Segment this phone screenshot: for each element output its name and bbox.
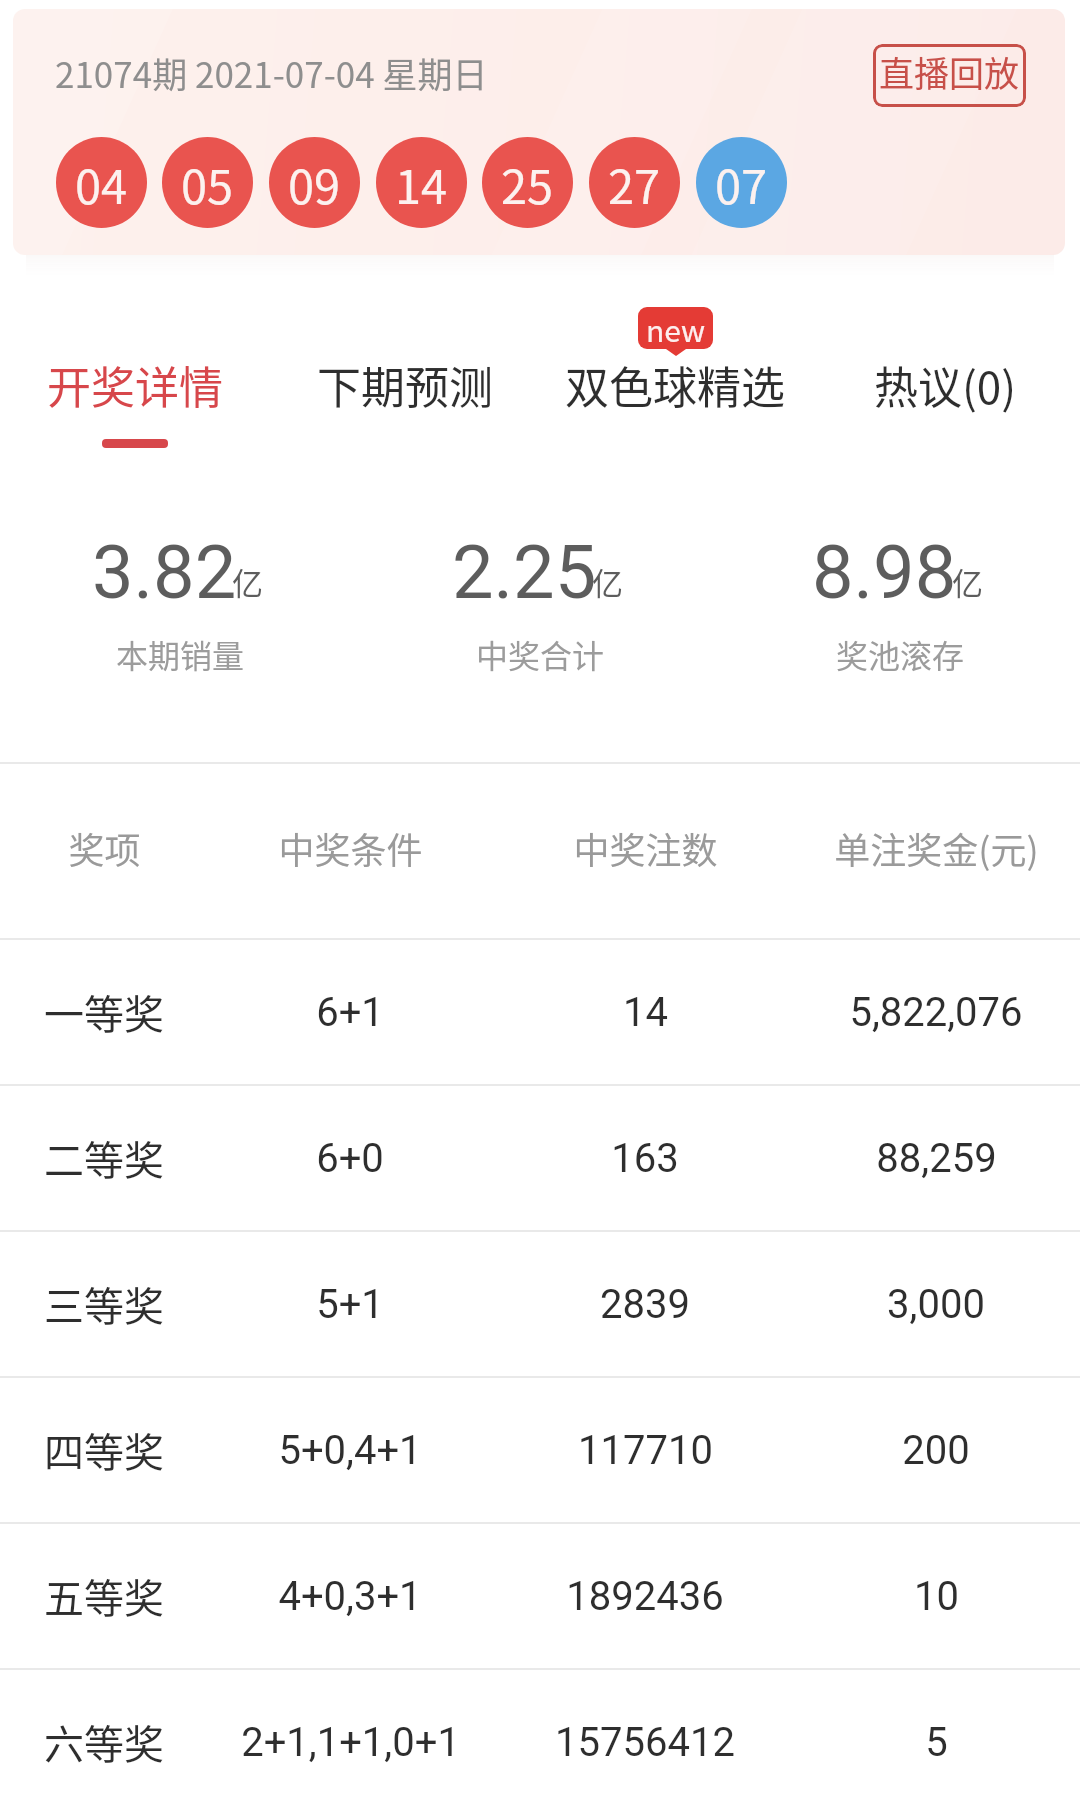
staticText: 6+0 xyxy=(316,1135,384,1182)
staticText: 中奖条件 xyxy=(278,822,423,874)
staticText: 117710 xyxy=(578,1427,713,1474)
button[interactable]: 一等奖 xyxy=(0,940,1080,1084)
staticText: 200 xyxy=(902,1427,970,1474)
button[interactable]: Number 09 xyxy=(269,137,360,228)
staticText: 2839 xyxy=(600,1281,690,1328)
button[interactable]: Number 25 xyxy=(482,137,573,228)
button[interactable]: 开奖详情 xyxy=(0,353,270,463)
staticText: 2+1,1+1,0+1 xyxy=(241,1719,460,1766)
staticText: 单注奖金(元) xyxy=(834,822,1039,874)
staticText: 5,822,076 xyxy=(849,989,1023,1036)
staticText: 27 xyxy=(608,149,661,217)
staticText: 15756412 xyxy=(555,1719,735,1766)
button[interactable]: 五等奖 xyxy=(0,1524,1080,1668)
button[interactable]: Number 07 xyxy=(696,137,787,228)
staticText: 奖池滚存 xyxy=(836,631,965,677)
staticText: 中奖注数 xyxy=(573,822,718,874)
button[interactable]: Number 14 xyxy=(376,137,467,228)
button[interactable]: Number 04 xyxy=(56,137,147,228)
button[interactable]: 六等奖 xyxy=(0,1670,1080,1814)
button[interactable]: 3.82 xyxy=(0,529,360,677)
staticText: 双色球精选 xyxy=(565,353,785,417)
staticText: 四等奖 xyxy=(44,1421,164,1479)
staticText: 奖项 xyxy=(68,822,141,874)
staticText: 5+0,4+1 xyxy=(278,1427,422,1474)
staticText: 热议(0) xyxy=(874,353,1017,417)
staticText: 4+0,3+1 xyxy=(278,1573,422,1620)
staticText: 8.98 xyxy=(812,529,957,616)
button[interactable]: 2.25 xyxy=(360,529,720,677)
staticText: 14 xyxy=(395,149,448,217)
button[interactable]: 热议(0) xyxy=(810,353,1080,463)
staticText: 5 xyxy=(925,1719,948,1766)
staticText: 直播回放 xyxy=(879,46,1020,97)
button[interactable]: 三等奖 xyxy=(0,1232,1080,1376)
staticText: 三等奖 xyxy=(44,1275,164,1333)
staticText: 亿 xyxy=(952,559,983,604)
button[interactable]: 直播回放 xyxy=(873,44,1026,107)
button[interactable]: Number 05 xyxy=(162,137,253,228)
button[interactable]: 四等奖 xyxy=(0,1378,1080,1522)
staticText: 10 xyxy=(914,1573,959,1620)
button[interactable]: 二等奖 xyxy=(0,1086,1080,1230)
staticText: new xyxy=(646,307,706,349)
staticText: 21074期 2021-07-04 星期日 xyxy=(55,47,488,98)
staticText: 二等奖 xyxy=(44,1129,164,1187)
staticText: 五等奖 xyxy=(44,1567,164,1625)
staticText: 05 xyxy=(181,149,234,217)
staticText: 14 xyxy=(623,989,668,1036)
staticText: 1892436 xyxy=(566,1573,724,1620)
staticText: 163 xyxy=(611,1135,679,1182)
staticText: 88,259 xyxy=(876,1135,997,1182)
button[interactable]: 下期预测 xyxy=(270,353,540,463)
staticText: 中奖合计 xyxy=(476,631,605,677)
staticText: 3.82 xyxy=(92,529,237,616)
button[interactable]: 双色球精选 xyxy=(540,353,810,463)
staticText: 04 xyxy=(75,149,128,217)
staticText: 亿 xyxy=(592,559,623,604)
staticText: 09 xyxy=(288,149,341,217)
staticText: 6+1 xyxy=(316,989,384,1036)
other: New xyxy=(638,307,713,356)
staticText: 下期预测 xyxy=(317,353,493,417)
staticText: 亿 xyxy=(232,559,263,604)
staticText: 3,000 xyxy=(887,1281,985,1328)
staticText: 2.25 xyxy=(452,529,597,616)
staticText: 开奖详情 xyxy=(47,353,223,417)
staticText: 六等奖 xyxy=(44,1713,164,1771)
staticText: 一等奖 xyxy=(44,983,164,1041)
staticText: 07 xyxy=(715,149,768,217)
button[interactable]: Number 27 xyxy=(589,137,680,228)
staticText: 5+1 xyxy=(316,1281,384,1328)
staticText: 本期销量 xyxy=(116,631,245,677)
button[interactable]: 8.98 xyxy=(720,529,1080,677)
staticText: 25 xyxy=(501,149,554,217)
button[interactable]: 奖项 xyxy=(0,764,1080,938)
